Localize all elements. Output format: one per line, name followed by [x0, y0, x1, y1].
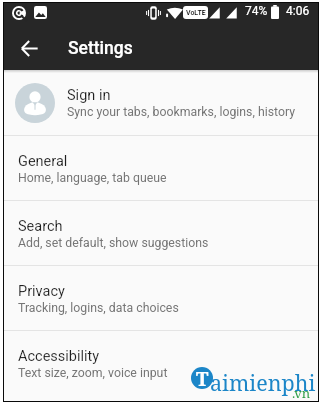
staticText: .vn [292, 384, 311, 402]
staticText: 74% [245, 4, 268, 18]
button[interactable]: Sign in [4, 70, 318, 135]
staticText: Sync your tabs, bookmarks, logins, histo… [67, 105, 296, 119]
button[interactable]: Privacy [4, 266, 318, 330]
staticText: Settings [68, 38, 133, 59]
staticText: Home, language, tab queue [18, 171, 167, 185]
staticText: Add, set default, show suggestions [18, 236, 209, 250]
staticText: Text size, zoom, voice input [18, 366, 168, 380]
button[interactable]: Back [13, 32, 45, 64]
staticText: Sign in [67, 87, 111, 104]
staticText: Tracking, logins, data choices [18, 301, 179, 315]
button[interactable]: General [4, 136, 318, 200]
staticText: aimienphi [210, 368, 316, 397]
staticText: VoLTE [186, 9, 206, 17]
staticText: General [18, 153, 68, 170]
staticText: Privacy [18, 283, 65, 300]
staticText: T [196, 367, 209, 388]
button[interactable]: Accessibility [4, 331, 318, 395]
button[interactable]: Search [4, 201, 318, 265]
staticText: Accessibility [18, 348, 100, 365]
staticText: 4:06 [286, 4, 310, 18]
staticText: Search [18, 218, 63, 235]
